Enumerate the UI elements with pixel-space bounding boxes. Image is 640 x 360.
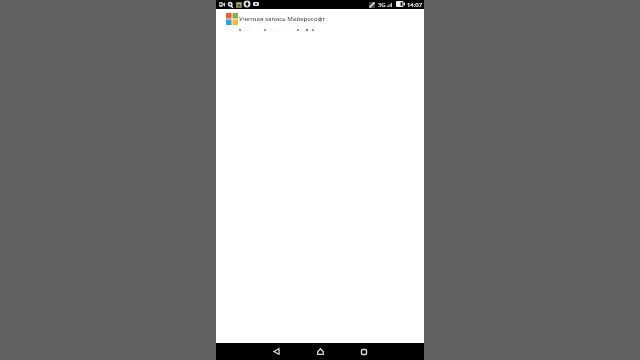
button[interactable]: Устройства <box>262 27 282 32</box>
staticText: 14:07 <box>407 1 423 9</box>
button[interactable]: Home <box>305 343 335 360</box>
staticText: Устройства <box>262 27 282 32</box>
staticText: Безопасность <box>295 27 319 32</box>
button[interactable]: Безопасность <box>295 27 319 32</box>
button[interactable]: Back <box>261 343 291 360</box>
button[interactable]: Главная <box>238 27 253 32</box>
button[interactable]: Recent apps <box>349 343 379 360</box>
staticText: Главная <box>238 27 253 32</box>
other: Microsoft <box>226 13 238 25</box>
button[interactable]: Microsoft <box>216 13 424 25</box>
staticText: Учетная запись Майкрософт <box>239 14 326 22</box>
staticText: 3G <box>378 1 386 9</box>
